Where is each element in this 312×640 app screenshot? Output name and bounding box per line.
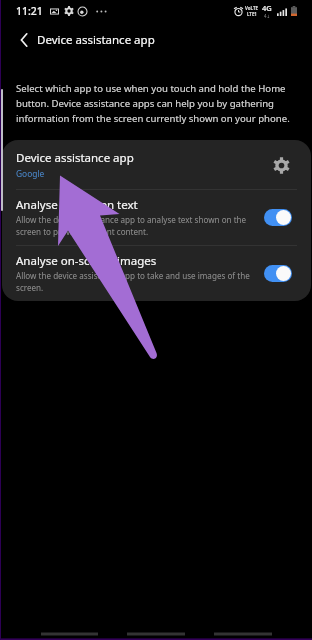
staticText: Analyse on-screen text <box>16 197 138 213</box>
staticText: 11:21 <box>16 4 43 18</box>
button[interactable]: Toggle <box>264 265 292 282</box>
staticText: Device assistance app <box>37 32 155 48</box>
staticText: 4↓ <box>264 13 271 19</box>
button[interactable]: Toggle <box>264 209 292 226</box>
staticText: Allow the device assistance app to take … <box>16 270 252 293</box>
staticText: LTE1 <box>247 11 257 17</box>
button[interactable]: Analyse on-screen text <box>2 190 311 245</box>
staticText: 4G <box>262 3 272 13</box>
staticText: Allow the device assistance app to analy… <box>16 214 252 237</box>
staticText: Device assistance app <box>16 150 134 166</box>
button[interactable]: Device assistance app <box>2 140 311 189</box>
staticText: VoLTE <box>245 5 258 11</box>
staticText: Google <box>16 168 45 179</box>
staticText: Select which app to use when you touch a… <box>16 82 294 125</box>
staticText: Analyse on-screen images <box>16 253 157 269</box>
button[interactable]: Analyse on-screen images <box>2 246 311 301</box>
button[interactable]: Settings <box>269 153 293 177</box>
button[interactable]: Back <box>12 28 36 52</box>
